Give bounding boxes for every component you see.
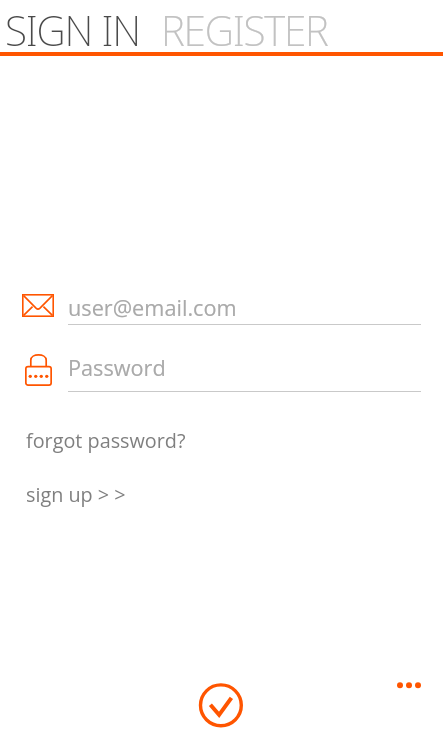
button[interactable]: Password (0, 357, 443, 397)
button[interactable]: user@email.com (0, 290, 443, 330)
staticText: SIGN IN (5, 0, 140, 59)
button[interactable]: REGISTER (150, 0, 344, 67)
button[interactable]: SIGN IN (0, 0, 150, 67)
button[interactable]: sign up > > (0, 479, 126, 512)
staticText: Password (68, 353, 166, 383)
button[interactable]: Confirm sign in (190, 674, 250, 734)
button[interactable]: More options (383, 663, 427, 707)
button[interactable]: forgot password? (0, 425, 186, 458)
staticText: REGISTER (161, 0, 328, 59)
staticText: user@email.com (68, 293, 237, 323)
